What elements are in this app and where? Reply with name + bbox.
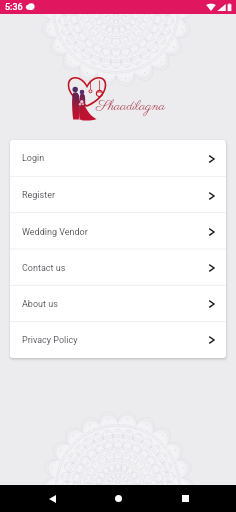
button[interactable]: Contact us: [10, 250, 226, 286]
button[interactable]: Register: [10, 177, 226, 214]
button[interactable]: Wedding Vendor: [10, 214, 226, 250]
button[interactable]: Home: [103, 485, 133, 512]
staticText: Register: [22, 190, 55, 201]
staticText: About us: [22, 299, 58, 310]
staticText: 5:36: [5, 2, 23, 13]
staticText: Shaadilagna: [96, 97, 166, 116]
staticText: Login: [22, 153, 45, 164]
button[interactable]: Privacy Policy: [10, 322, 226, 358]
button[interactable]: Login: [10, 140, 226, 177]
button[interactable]: Recents: [170, 485, 200, 512]
staticText: Wedding Vendor: [22, 227, 88, 238]
staticText: Privacy Policy: [22, 335, 78, 346]
staticText: Contact us: [22, 263, 66, 274]
button[interactable]: Back: [37, 485, 67, 512]
button[interactable]: About us: [10, 286, 226, 322]
